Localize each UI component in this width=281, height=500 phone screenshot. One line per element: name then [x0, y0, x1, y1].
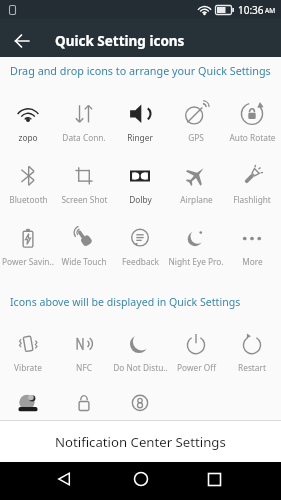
button[interactable]	[241, 165, 263, 187]
staticText: GPS	[188, 132, 204, 143]
button[interactable]	[49, 464, 79, 494]
button[interactable]: Feedback	[112, 227, 168, 267]
staticText: zopo	[18, 132, 38, 143]
button[interactable]	[10, 29, 34, 53]
staticText: 10:36	[238, 3, 264, 17]
staticText: Power Off	[177, 362, 216, 373]
button[interactable]	[126, 464, 156, 494]
button[interactable]	[241, 333, 263, 355]
staticText: Screen Shot	[61, 194, 108, 205]
staticText: Airplane	[180, 194, 213, 205]
button[interactable]: NFC	[56, 333, 112, 373]
staticText: Icons above will be displayed in Quick S…	[10, 295, 241, 309]
staticText: More	[242, 256, 263, 267]
button[interactable]	[129, 333, 151, 355]
staticText: Wide Touch	[61, 256, 107, 267]
staticText: Quick Setting icons	[55, 32, 185, 50]
button[interactable]	[73, 227, 95, 249]
button[interactable]	[241, 103, 263, 125]
staticText: Restart	[238, 362, 266, 373]
button[interactable]	[17, 333, 39, 355]
button[interactable]	[73, 392, 95, 414]
button[interactable]: Flashlight	[224, 165, 280, 205]
button[interactable]	[185, 333, 207, 355]
button[interactable]: Notification Center Settings	[0, 421, 281, 462]
staticText: Do Not Distu..	[113, 362, 168, 373]
button[interactable]: More	[224, 227, 280, 267]
staticText: Bluetooth	[9, 194, 48, 205]
button[interactable]	[129, 392, 151, 414]
button[interactable]: Restart	[224, 333, 280, 373]
button[interactable]	[17, 103, 39, 125]
button[interactable]	[17, 392, 39, 414]
button[interactable]: Auto Rotate	[224, 103, 280, 143]
button[interactable]: Do Not Distu..	[112, 333, 168, 373]
button[interactable]	[0, 392, 56, 432]
staticText: Ringer	[127, 132, 153, 143]
button[interactable]: Power Off	[168, 333, 224, 373]
button[interactable]	[112, 392, 168, 432]
button[interactable]: Airplane	[168, 165, 224, 205]
staticText: Data Conn.	[62, 132, 106, 143]
staticText: Auto Rotate	[229, 132, 276, 143]
staticText: Feedback	[122, 256, 159, 267]
button[interactable]: Vibrate	[0, 333, 56, 373]
staticText: Power Savin..	[2, 256, 54, 267]
button[interactable]	[17, 227, 39, 249]
button[interactable]: Dolby	[112, 165, 168, 205]
button[interactable]: Data Conn.	[56, 103, 112, 143]
staticText: Night Eye Pro.	[168, 256, 224, 267]
button[interactable]	[185, 227, 207, 249]
staticText: AM	[265, 6, 276, 15]
button[interactable]: GPS	[168, 103, 224, 143]
button[interactable]: Wide Touch	[56, 227, 112, 267]
staticText: Notification Center Settings	[55, 433, 226, 451]
button[interactable]	[129, 227, 151, 249]
button[interactable]: Ringer	[112, 103, 168, 143]
button[interactable]: Bluetooth	[0, 165, 56, 205]
button[interactable]	[56, 392, 112, 432]
button[interactable]	[17, 165, 39, 187]
button[interactable]	[129, 103, 151, 125]
staticText: Drag and drop icons to arrange your Quic…	[10, 63, 271, 78]
button[interactable]: Screen Shot	[56, 165, 112, 205]
button[interactable]	[185, 165, 207, 187]
button[interactable]: Power Savin..	[0, 227, 56, 267]
button[interactable]: Night Eye Pro.	[168, 227, 224, 267]
button[interactable]	[129, 165, 151, 187]
button[interactable]	[73, 333, 95, 355]
button[interactable]	[185, 103, 207, 125]
button[interactable]	[73, 103, 95, 125]
button[interactable]	[241, 227, 263, 249]
staticText: NFC	[76, 362, 92, 373]
staticText: Vibrate	[14, 362, 42, 373]
button[interactable]	[199, 464, 229, 494]
staticText: Dolby	[129, 194, 152, 205]
button[interactable]: zopo	[0, 103, 56, 143]
button[interactable]	[73, 165, 95, 187]
staticText: Flashlight	[233, 194, 271, 205]
